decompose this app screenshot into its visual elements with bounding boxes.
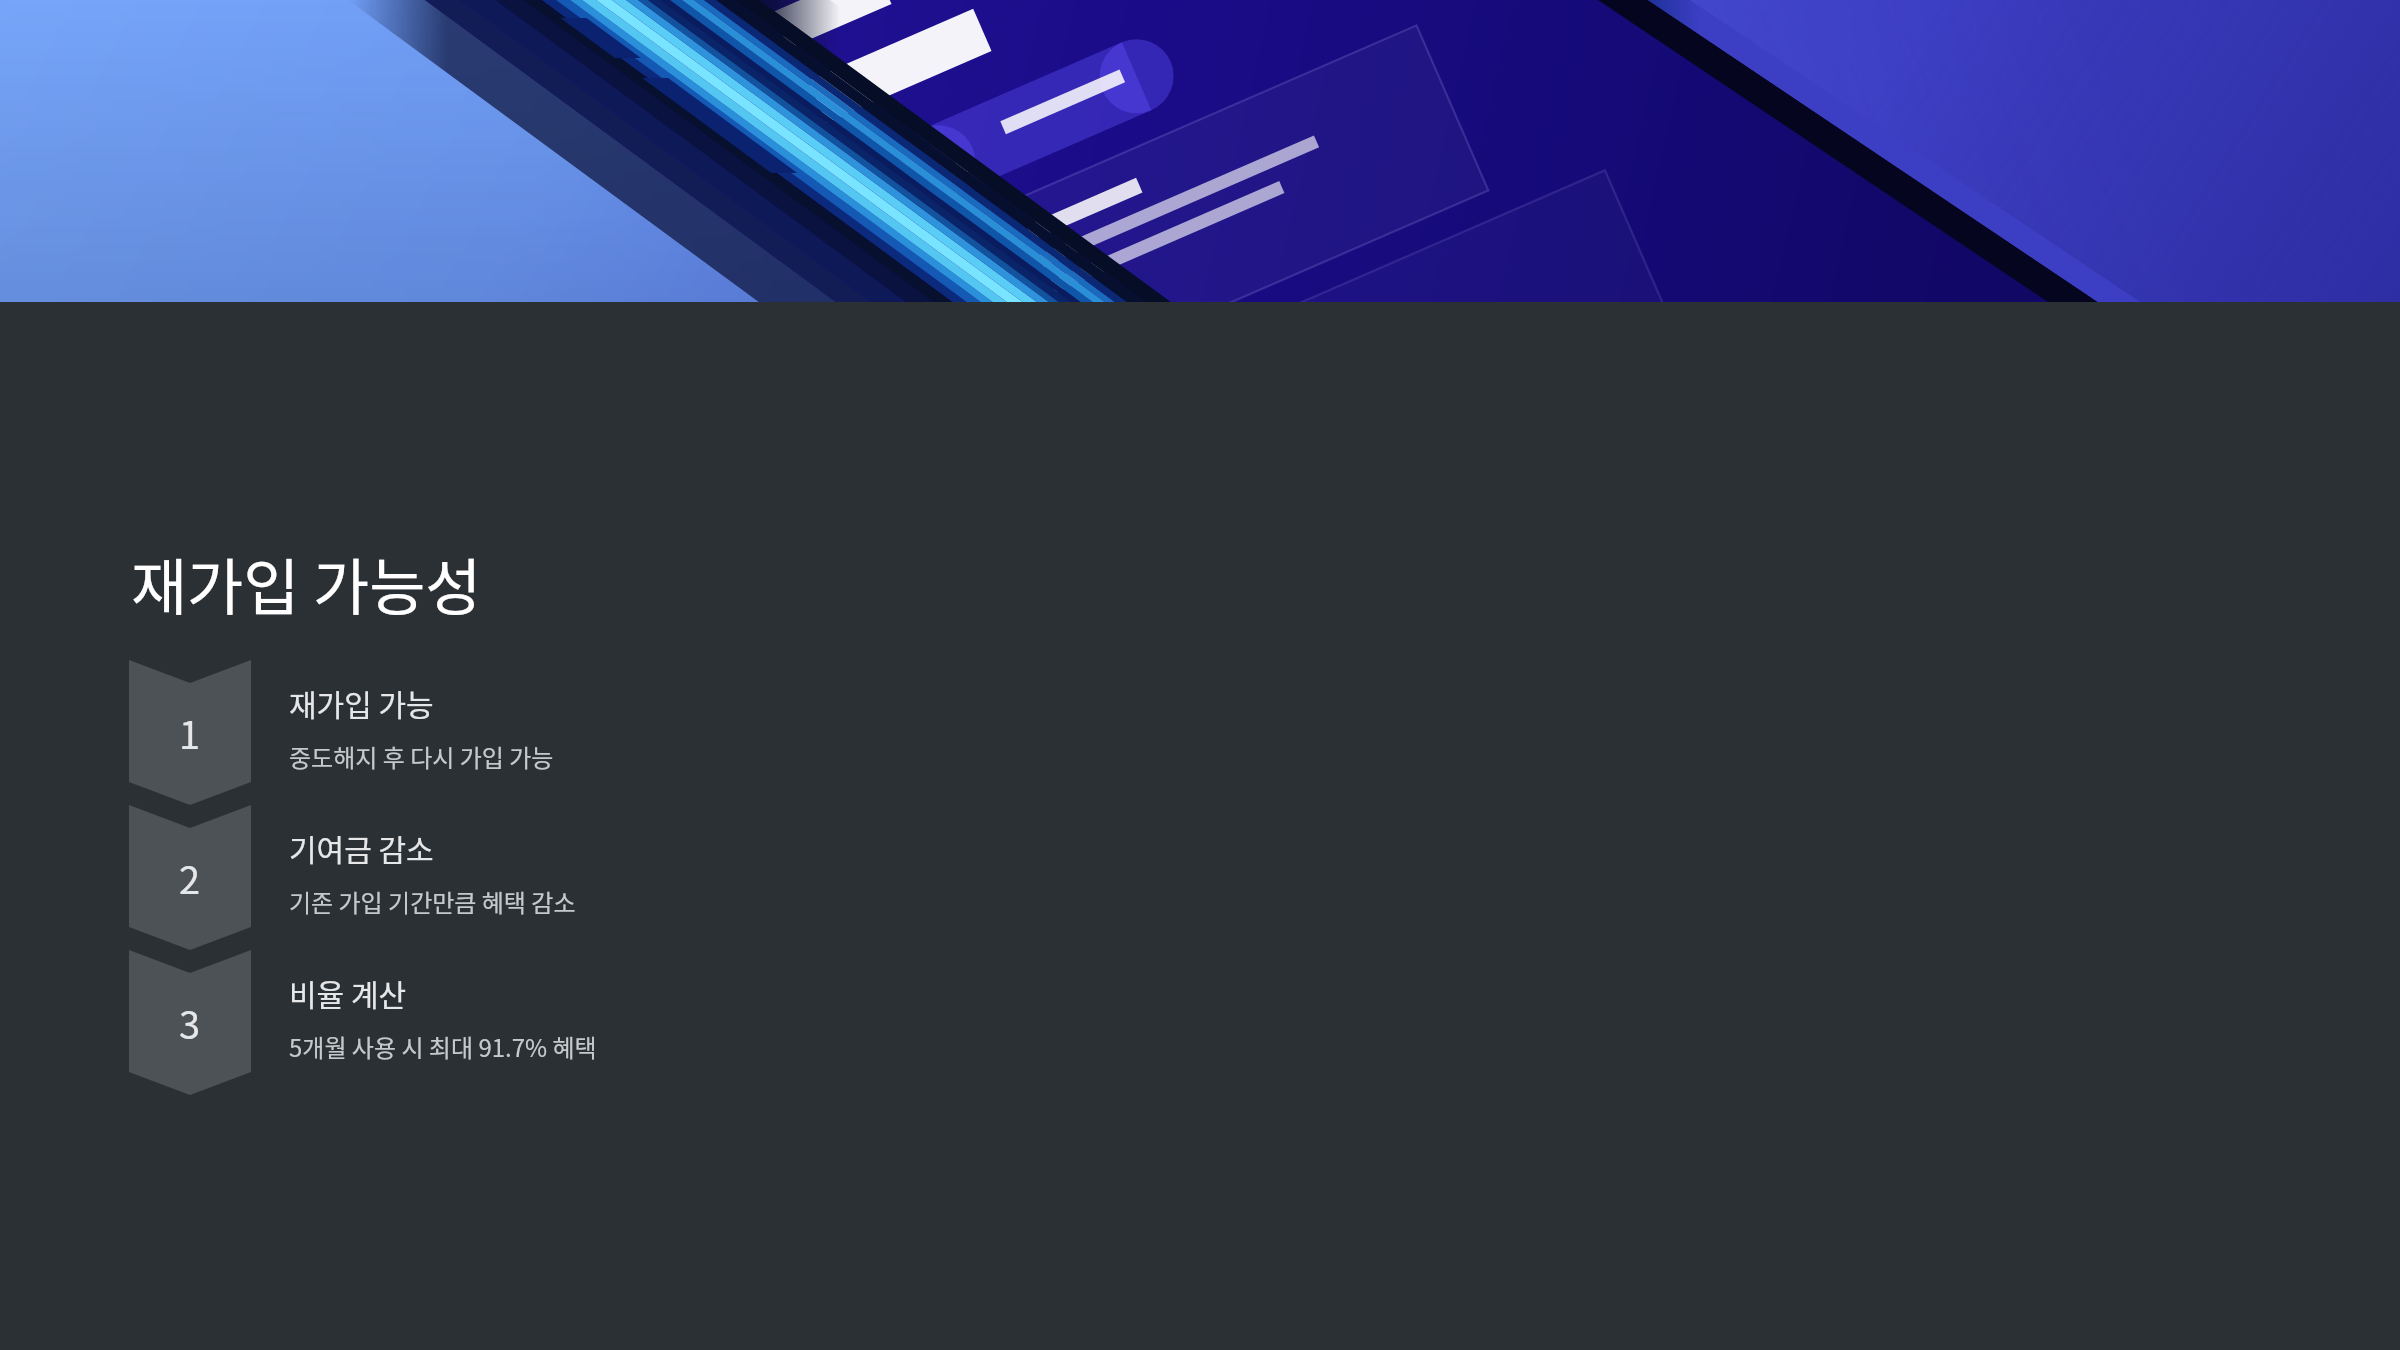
staticText: 3 bbox=[179, 995, 201, 1050]
staticText: 비율 계산 bbox=[289, 971, 407, 1014]
staticText: 2 bbox=[179, 850, 201, 905]
other: Smartphone banking app photo bbox=[0, 0, 2400, 302]
staticText: 중도해지 후 다시 가입 가능 bbox=[289, 739, 554, 774]
button[interactable]: 1 bbox=[0, 660, 2400, 805]
staticText: 1 bbox=[179, 705, 201, 760]
button[interactable]: 2 bbox=[0, 805, 2400, 950]
staticText: 재가입 가능성 bbox=[131, 539, 482, 627]
button[interactable]: 3 bbox=[0, 950, 2400, 1095]
staticText: 기존 가입 기간만큼 혜택 감소 bbox=[289, 884, 576, 919]
staticText: 5개월 사용 시 최대 91.7% 혜택 bbox=[289, 1029, 597, 1064]
staticText: 재가입 가능 bbox=[289, 681, 434, 724]
staticText: 기여금 감소 bbox=[289, 826, 434, 869]
